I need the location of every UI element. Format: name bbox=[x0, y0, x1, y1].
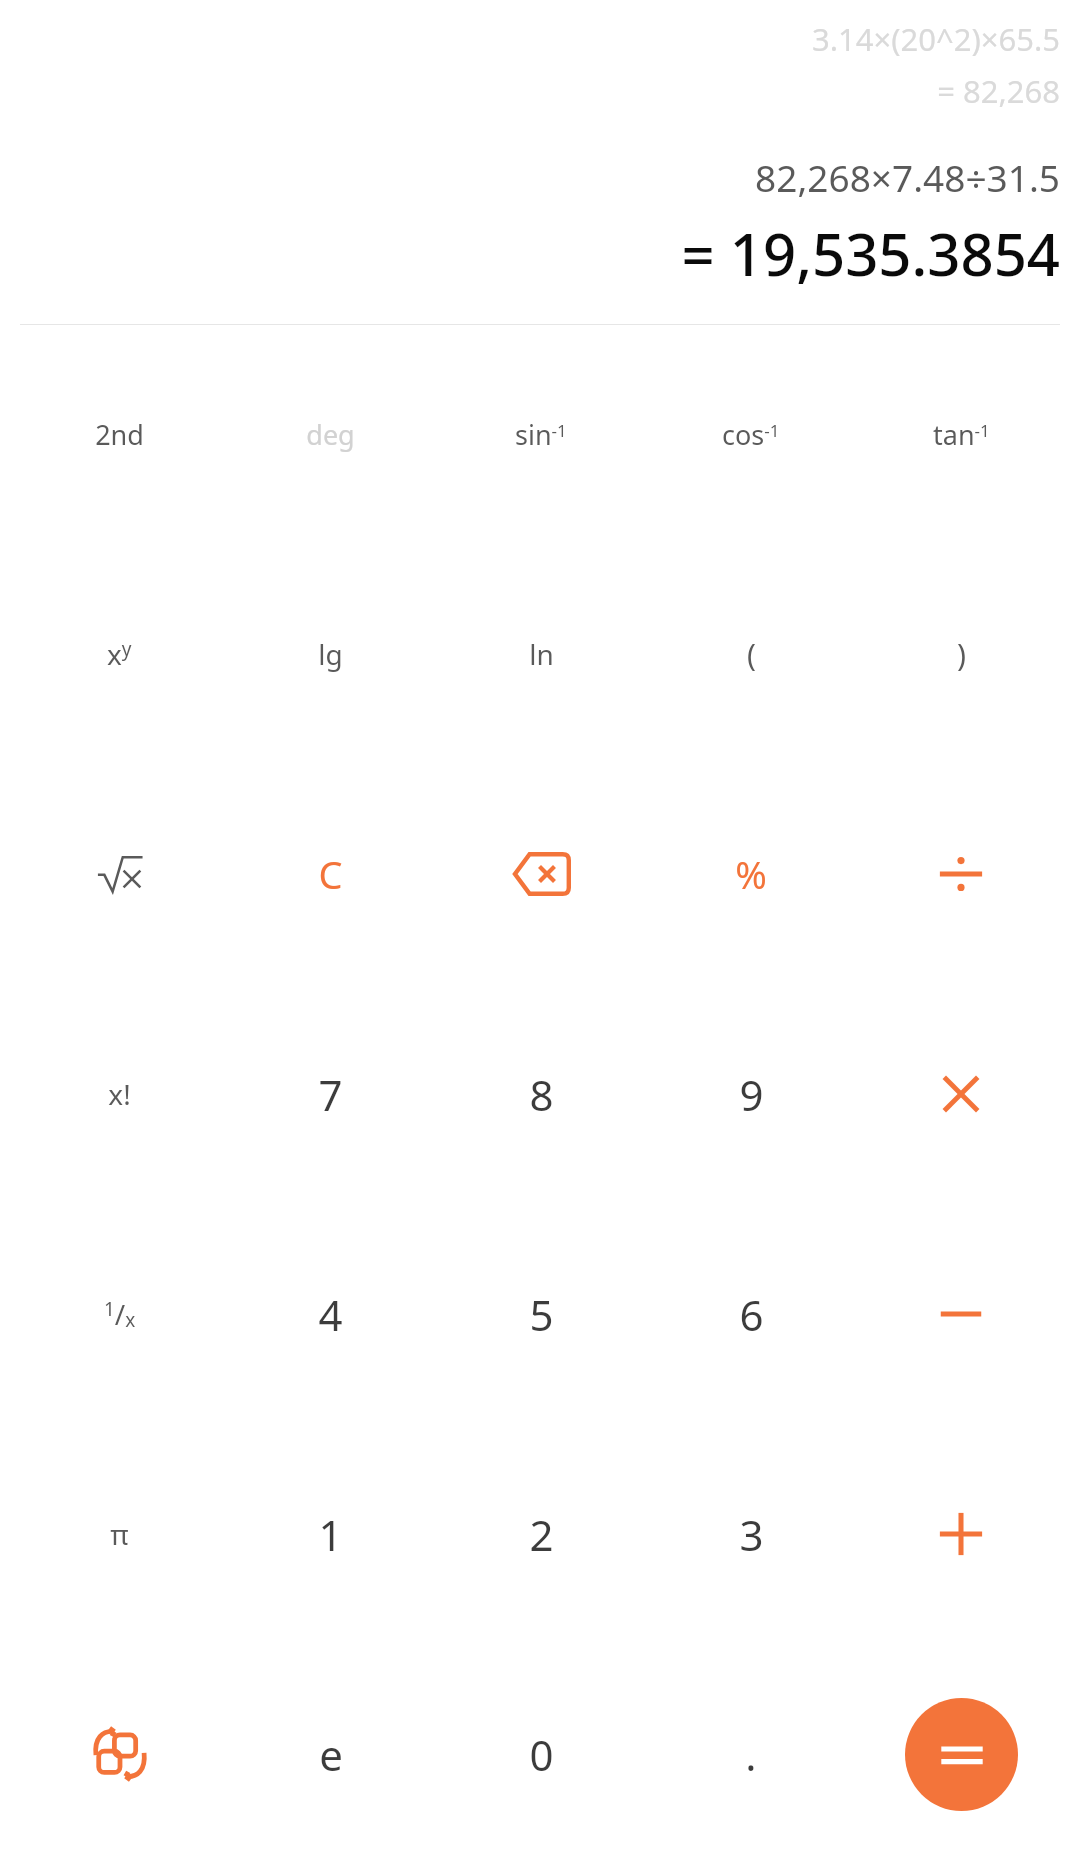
staticText: 8 bbox=[529, 1066, 554, 1123]
staticText: ( bbox=[747, 634, 756, 675]
staticText: = 82,268 bbox=[937, 70, 1060, 112]
button[interactable]: ) bbox=[856, 544, 1066, 764]
staticText: 3 bbox=[739, 1506, 764, 1563]
staticText: 1/x bbox=[104, 1295, 136, 1333]
staticText: sin-1 bbox=[515, 416, 567, 453]
staticText: x! bbox=[108, 1075, 131, 1113]
staticText: ) bbox=[957, 634, 966, 675]
button[interactable]: Unit converter bbox=[14, 1644, 225, 1864]
button[interactable]: x! bbox=[14, 984, 225, 1204]
button[interactable]: 1/x bbox=[14, 1204, 225, 1424]
staticText: 7 bbox=[318, 1066, 343, 1123]
button[interactable]: 3 bbox=[646, 1424, 856, 1644]
button[interactable]: ( bbox=[646, 544, 856, 764]
staticText: % bbox=[735, 848, 767, 900]
staticText: ln bbox=[529, 635, 554, 673]
button[interactable]: 0 bbox=[436, 1644, 646, 1864]
button[interactable]: 5 bbox=[436, 1204, 646, 1424]
button[interactable]: 2nd bbox=[14, 325, 225, 544]
staticText: 2 bbox=[529, 1506, 554, 1563]
button[interactable]: lg bbox=[225, 544, 436, 764]
button[interactable] bbox=[905, 1698, 1018, 1811]
staticText: 6 bbox=[739, 1286, 764, 1343]
staticText: e bbox=[319, 1726, 343, 1783]
staticText: = 19,535.3854 bbox=[681, 214, 1060, 293]
button[interactable]: 7 bbox=[225, 984, 436, 1204]
button[interactable]: Backspace bbox=[436, 764, 646, 984]
button[interactable]: sin-1 bbox=[436, 325, 646, 544]
staticText: tan-1 bbox=[933, 416, 990, 453]
button[interactable]: C bbox=[225, 764, 436, 984]
button[interactable]: xy bbox=[14, 544, 225, 764]
button[interactable]: ln bbox=[436, 544, 646, 764]
staticText: 3.14×(20^2)×65.5 bbox=[812, 18, 1060, 60]
staticText: lg bbox=[318, 635, 343, 673]
button[interactable]: Minus bbox=[856, 1204, 1066, 1424]
button[interactable]: deg bbox=[225, 325, 436, 544]
staticText: 9 bbox=[739, 1066, 764, 1123]
button[interactable]: 9 bbox=[646, 984, 856, 1204]
button[interactable]: Equals bbox=[856, 1644, 1066, 1864]
staticText: deg bbox=[306, 416, 355, 453]
button[interactable]: % bbox=[646, 764, 856, 984]
staticText: xy bbox=[107, 635, 132, 673]
button[interactable]: Square root bbox=[14, 764, 225, 984]
button[interactable]: 8 bbox=[436, 984, 646, 1204]
button[interactable]: 6 bbox=[646, 1204, 856, 1424]
staticText: C bbox=[318, 848, 343, 900]
button[interactable]: . bbox=[646, 1644, 856, 1864]
staticText: cos-1 bbox=[722, 416, 780, 453]
button[interactable]: tan-1 bbox=[856, 325, 1066, 544]
staticText: 5 bbox=[529, 1286, 554, 1343]
button[interactable]: 4 bbox=[225, 1204, 436, 1424]
button[interactable]: 1 bbox=[225, 1424, 436, 1644]
button[interactable]: Multiply bbox=[856, 984, 1066, 1204]
button[interactable]: e bbox=[225, 1644, 436, 1864]
staticText: 4 bbox=[318, 1286, 343, 1343]
staticText: π bbox=[110, 1515, 129, 1553]
staticText: 0 bbox=[529, 1726, 554, 1783]
button[interactable]: Divide bbox=[856, 764, 1066, 984]
button[interactable]: 2 bbox=[436, 1424, 646, 1644]
button[interactable]: π bbox=[14, 1424, 225, 1644]
staticText: 82,268×7.48÷31.5 bbox=[755, 152, 1060, 202]
staticText: 1 bbox=[318, 1506, 343, 1563]
button[interactable]: cos-1 bbox=[646, 325, 856, 544]
button[interactable]: Plus bbox=[856, 1424, 1066, 1644]
staticText: 2nd bbox=[95, 416, 144, 453]
staticText: . bbox=[745, 1726, 757, 1783]
